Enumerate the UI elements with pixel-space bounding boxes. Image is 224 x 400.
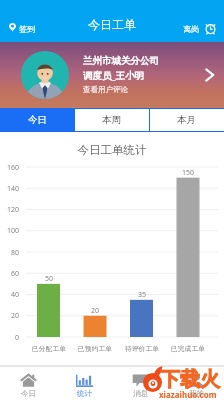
staticText: 50 <box>37 274 61 284</box>
staticText: 已分配工单 <box>25 344 73 353</box>
button[interactable]: 兰州市城关分公司 <box>0 42 224 108</box>
staticText: 本月 <box>177 114 196 126</box>
staticText: 待评价工单 <box>118 344 166 353</box>
button[interactable]: 签到 <box>9 22 36 32</box>
button[interactable]: 本月 <box>149 108 224 132</box>
staticText: 已完成工单 <box>164 344 212 353</box>
staticText: 今日 <box>28 114 47 126</box>
button[interactable]: 离岗 <box>183 22 216 33</box>
staticText: 80 <box>0 248 19 258</box>
staticText: 160 <box>0 163 19 173</box>
staticText: 今日 <box>21 389 36 398</box>
button[interactable]: 今日 <box>0 108 74 132</box>
staticText: 调度员_王小明 <box>83 69 144 82</box>
staticText: 今日工单 <box>88 17 136 32</box>
staticText: 今日工单统计 <box>0 143 224 157</box>
staticText: 统计 <box>77 389 92 398</box>
staticText: 兰州市城关分公司 <box>83 55 159 67</box>
staticText: 20 <box>0 311 19 321</box>
staticText: 100 <box>0 226 19 236</box>
staticText: 查看用户评论 <box>83 85 128 94</box>
staticText: 消息 <box>133 389 148 398</box>
button[interactable]: 统计 <box>56 367 112 400</box>
staticText: 60 <box>0 269 19 279</box>
staticText: 本周 <box>102 114 121 126</box>
button[interactable]: 今日 <box>0 367 56 400</box>
staticText: 120 <box>0 205 19 215</box>
button[interactable]: 我的 <box>168 367 224 400</box>
staticText: 已预约工单 <box>71 344 119 353</box>
other: Off duty <box>205 23 216 34</box>
staticText: 0 <box>0 333 19 343</box>
staticText: 140 <box>0 184 19 194</box>
staticText: 150 <box>176 168 200 178</box>
button[interactable]: 本周 <box>74 108 149 132</box>
staticText: 签到 <box>19 24 36 34</box>
staticText: 下载火 <box>160 367 220 392</box>
staticText: 离岗 <box>183 24 200 34</box>
staticText: 40 <box>0 290 19 300</box>
button[interactable]: 消息 <box>112 367 168 400</box>
staticText: 20 <box>83 306 107 316</box>
staticText: xiazaihuo.com <box>159 389 217 400</box>
staticText: 35 <box>130 290 154 300</box>
staticText: 我的 <box>189 389 204 398</box>
